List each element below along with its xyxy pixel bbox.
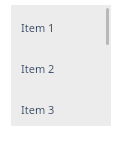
button[interactable]: Item 3	[11, 99, 111, 120]
staticText: Item 2	[21, 61, 55, 76]
staticText: Item 3	[21, 102, 55, 117]
button[interactable]: Item 1	[11, 17, 111, 38]
staticText: Item 1	[21, 20, 55, 35]
button[interactable]: Item 2	[11, 58, 111, 79]
